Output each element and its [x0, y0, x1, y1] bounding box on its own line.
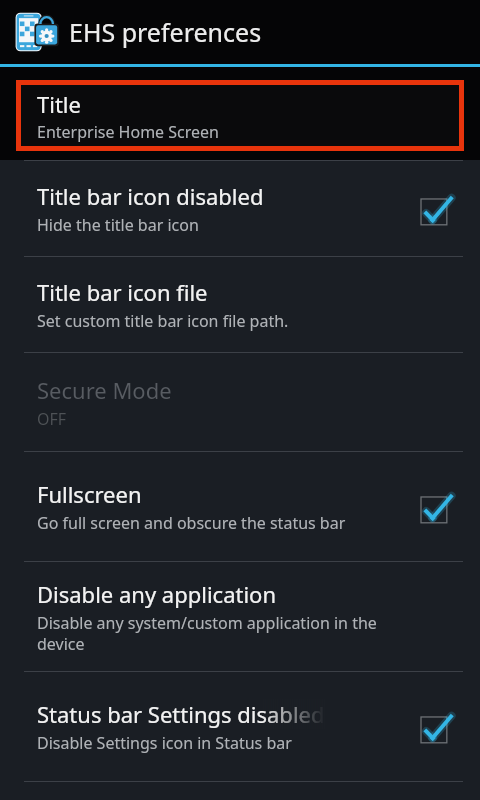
- staticText: Disable any system/custom application in…: [37, 612, 406, 655]
- button[interactable]: Disable any application: [0, 562, 480, 671]
- button[interactable]: Status bar Settings disabled: [0, 672, 480, 781]
- button[interactable]: Toggle Title bar icon disabled: [421, 192, 455, 226]
- button[interactable]: Title bar icon disabled: [0, 161, 480, 256]
- button[interactable]: Toggle Status bar Settings disabled: [421, 710, 455, 744]
- staticText: Title: [37, 89, 81, 119]
- staticText: Title bar icon disabled: [37, 181, 264, 211]
- staticText: OFF: [37, 408, 67, 430]
- staticText: EHS preferences: [69, 15, 262, 49]
- staticText: Title bar icon file: [37, 277, 208, 307]
- button[interactable]: Title bar icon file: [0, 257, 480, 352]
- staticText: Fullscreen: [37, 479, 142, 509]
- staticText: Hide the title bar icon: [37, 214, 199, 236]
- button[interactable]: Secure Mode: [0, 353, 480, 451]
- staticText: Go full screen and obscure the status ba…: [37, 512, 346, 534]
- staticText: Set custom title bar icon file path.: [37, 310, 289, 332]
- staticText: Enterprise Home Screen: [37, 121, 219, 143]
- staticText: Disable Settings icon in Status bar: [37, 732, 292, 754]
- button[interactable]: Fullscreen: [0, 452, 480, 561]
- staticText: Secure Mode: [37, 375, 172, 405]
- button[interactable]: Toggle Fullscreen: [421, 490, 455, 524]
- staticText: Status bar Settings disabled: [37, 699, 325, 729]
- button[interactable]: Title: [21, 85, 459, 146]
- staticText: Disable any application: [37, 579, 277, 609]
